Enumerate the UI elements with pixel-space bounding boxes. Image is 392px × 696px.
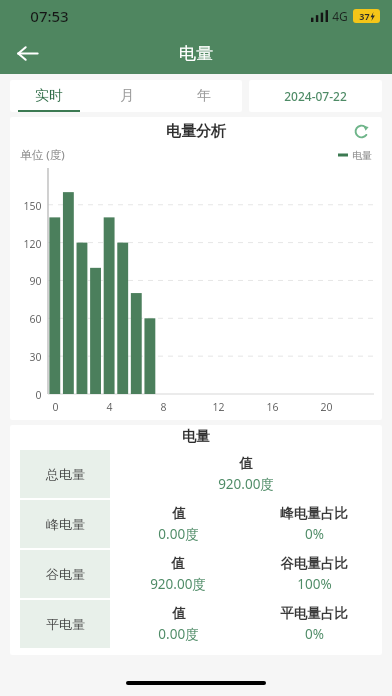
staticText: 电量分析	[166, 122, 226, 141]
button[interactable]: Refresh	[348, 118, 374, 144]
button[interactable]: 实时	[10, 80, 88, 112]
staticText: 电量	[352, 149, 372, 162]
staticText: 总电量	[46, 466, 85, 482]
staticText: 电量	[179, 43, 213, 64]
staticText: 月	[120, 87, 134, 105]
staticText: 实时	[35, 87, 63, 105]
staticText: 4G	[332, 8, 348, 24]
staticText: 0	[35, 388, 42, 402]
staticText: 100%	[297, 575, 332, 593]
staticText: 920.00度	[150, 575, 206, 593]
staticText: 920.00度	[218, 475, 274, 493]
staticText: 谷电量	[46, 566, 85, 582]
staticText: 90	[29, 274, 42, 288]
staticText: 150	[23, 199, 42, 213]
staticText: 4	[106, 400, 113, 414]
button[interactable]: 谷电量	[10, 549, 382, 599]
staticText: 平电量占比	[280, 605, 348, 622]
button[interactable]: 平电量	[10, 599, 382, 649]
staticText: 谷电量占比	[280, 555, 348, 572]
button[interactable]: Back	[8, 34, 46, 72]
staticText: 峰电量	[46, 516, 85, 532]
staticText: 值	[172, 505, 186, 522]
staticText: 0%	[305, 525, 324, 543]
staticText: 8	[160, 400, 167, 414]
staticText: 峰电量占比	[280, 505, 348, 522]
button[interactable]: 2024-07-22	[249, 80, 382, 112]
staticText: 值	[172, 605, 186, 622]
staticText: 值	[171, 555, 185, 572]
staticText: 120	[23, 237, 42, 251]
staticText: 16	[266, 400, 279, 414]
staticText: 0.00度	[158, 525, 199, 543]
staticText: 电量	[182, 428, 210, 446]
staticText: 37	[359, 10, 370, 22]
staticText: 平电量	[46, 616, 85, 632]
button[interactable]: 年	[165, 80, 242, 112]
staticText: 值	[239, 455, 253, 472]
staticText: 年	[197, 87, 211, 105]
staticText: 2024-07-22	[284, 88, 347, 104]
button[interactable]: 峰电量	[10, 499, 382, 549]
staticText: 60	[29, 312, 42, 326]
button[interactable]: 总电量	[10, 449, 382, 499]
staticText: 20	[320, 400, 333, 414]
staticText: 12	[212, 400, 225, 414]
staticText: 0%	[305, 625, 324, 643]
staticText: 0	[52, 400, 59, 414]
staticText: 30	[29, 350, 42, 364]
staticText: 0.00度	[158, 625, 199, 643]
staticText: 07:53	[30, 6, 69, 26]
staticText: 单位 (度)	[20, 147, 65, 163]
button[interactable]: 月	[88, 80, 165, 112]
